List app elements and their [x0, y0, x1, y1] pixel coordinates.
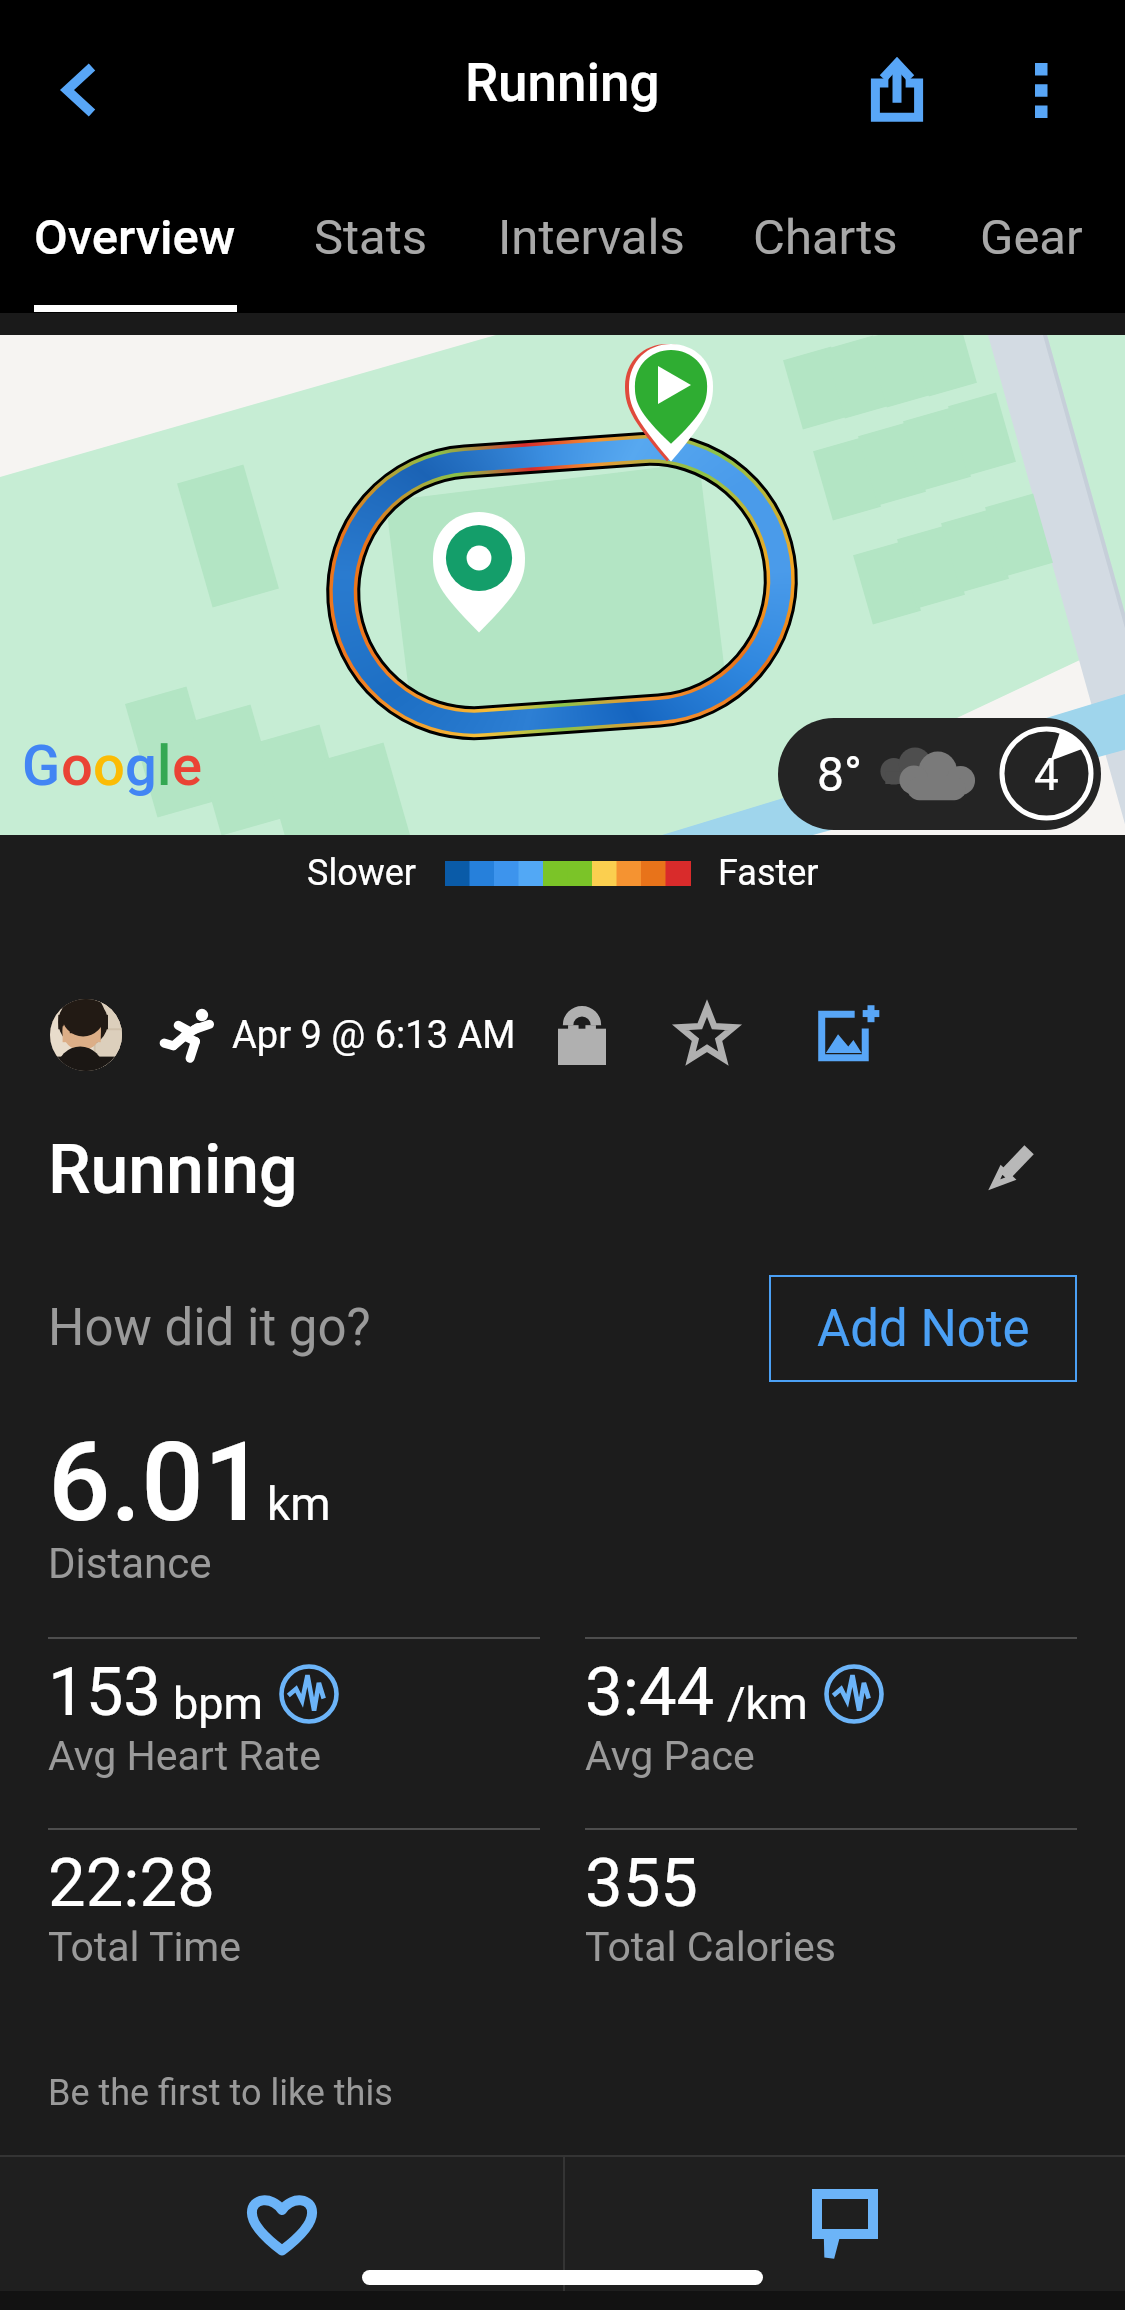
staticText: l — [157, 733, 172, 799]
staticText: /km — [727, 1677, 808, 1730]
button[interactable]: Charts — [733, 174, 918, 300]
button[interactable]: Share — [849, 42, 945, 138]
staticText: 8° — [817, 746, 862, 802]
staticText: Charts — [753, 209, 898, 266]
staticText: o — [61, 733, 93, 799]
staticText: bpm — [173, 1677, 263, 1730]
staticText: 22:28 — [48, 1844, 215, 1923]
staticText: o — [93, 733, 125, 799]
button[interactable]: Like — [0, 2155, 563, 2291]
staticText: Total Time — [48, 1923, 242, 1971]
staticText: Stats — [314, 209, 428, 266]
button[interactable]: Weather — [778, 718, 1101, 830]
staticText: Add Note — [817, 1299, 1030, 1359]
staticText: 3:44 — [585, 1653, 715, 1732]
staticText: How did it go? — [48, 1298, 371, 1358]
button[interactable]: Star activity — [673, 1001, 741, 1069]
staticText: 6.01 — [48, 1418, 267, 1547]
staticText: e — [172, 733, 203, 799]
staticText: Apr 9 @ 6:13 AM — [232, 1013, 516, 1058]
staticText: 355 — [585, 1844, 698, 1923]
button[interactable]: Add Note — [769, 1275, 1077, 1382]
button[interactable]: Athlete profile — [50, 999, 122, 1071]
staticText: Avg Pace — [585, 1732, 755, 1780]
staticText: Faster — [718, 852, 819, 894]
staticText: Avg Heart Rate — [48, 1732, 322, 1780]
staticText: g — [125, 733, 157, 799]
button[interactable]: Intervals — [478, 174, 705, 300]
button[interactable]: Overview — [14, 174, 256, 300]
staticText: Overview — [34, 209, 236, 266]
staticText: Running — [48, 1130, 298, 1210]
button[interactable]: Back — [30, 45, 120, 135]
staticText: Distance — [48, 1539, 212, 1588]
staticText: Intervals — [498, 209, 685, 266]
staticText: 153 — [48, 1653, 161, 1732]
button[interactable]: More options — [995, 44, 1087, 136]
staticText: 4 — [1034, 749, 1059, 801]
staticText: G — [22, 733, 61, 799]
staticText: Total Calories — [585, 1923, 836, 1971]
staticText: Running — [465, 52, 660, 114]
button[interactable]: Gear — [960, 174, 1103, 300]
staticText: Gear — [980, 209, 1083, 266]
button[interactable]: Edit activity — [972, 1117, 1056, 1201]
button[interactable]: Comment — [565, 2155, 1125, 2291]
button[interactable]: Stats — [294, 174, 448, 300]
staticText: km — [267, 1477, 331, 1531]
staticText: Slower — [307, 852, 417, 894]
button[interactable]: Add photo — [813, 1001, 881, 1069]
button[interactable]: Private activity — [549, 1002, 615, 1068]
staticText: Be the first to like this — [48, 2072, 393, 2114]
